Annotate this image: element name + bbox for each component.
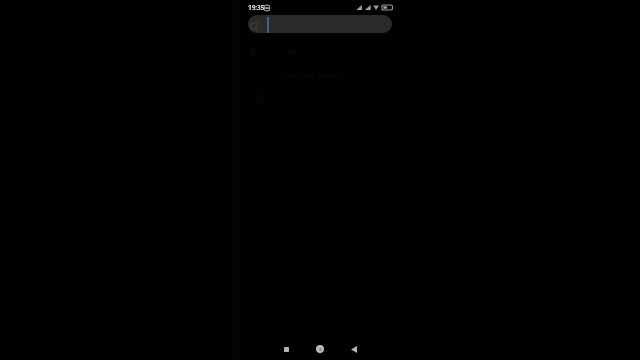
button[interactable]: Recent apps bbox=[279, 342, 293, 356]
other: Screenshot notification bbox=[264, 5, 270, 11]
button[interactable]: Search bbox=[248, 15, 392, 33]
staticText: 19:35 bbox=[248, 3, 265, 12]
button[interactable]: Back bbox=[347, 342, 361, 356]
other: Signal, Wi-Fi and battery status bbox=[356, 5, 394, 10]
button[interactable]: Home bbox=[313, 342, 327, 356]
